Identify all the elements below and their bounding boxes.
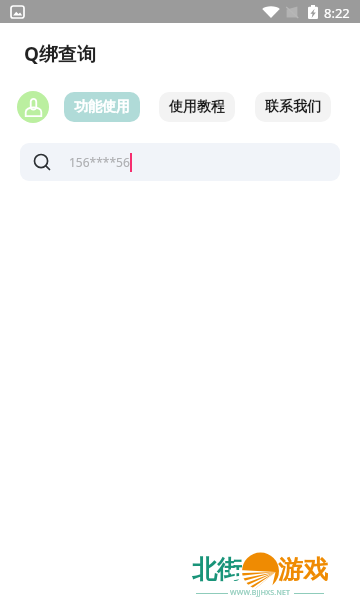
staticText: 功能使用 — [74, 98, 130, 116]
staticText: WWW.BJJHXS.NET — [230, 588, 291, 598]
staticText: 北街 — [192, 554, 242, 585]
button[interactable]: Profile — [17, 91, 49, 123]
button[interactable]: 功能使用 — [64, 92, 140, 122]
staticText: 156****56 — [69, 154, 130, 170]
staticText: 8:22 — [324, 4, 350, 22]
button[interactable]: 156****56 — [20, 143, 340, 181]
staticText: 使用教程 — [169, 98, 225, 116]
button[interactable]: 联系我们 — [255, 92, 331, 122]
button[interactable]: 使用教程 — [159, 92, 235, 122]
staticText: 游戏 — [278, 554, 328, 585]
staticText: 联系我们 — [265, 98, 321, 116]
staticText: Q绑查询 — [24, 41, 97, 67]
